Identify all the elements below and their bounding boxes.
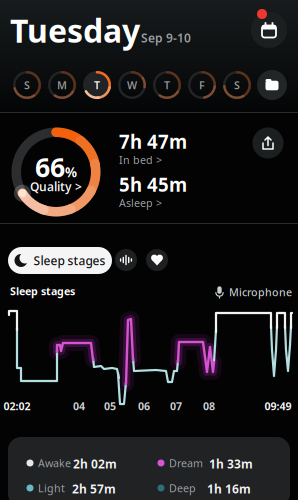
staticText: 07	[170, 399, 182, 413]
staticText: Microphone	[229, 285, 292, 299]
staticText: Sleep stages	[10, 284, 75, 298]
staticText: Tuesday	[10, 9, 140, 51]
staticText: 1h 33m	[209, 456, 253, 472]
staticText: Asleep >	[119, 196, 162, 210]
staticText: In bed >	[119, 153, 162, 167]
staticText: T	[164, 78, 170, 92]
button[interactable]: T	[82, 70, 112, 100]
button[interactable]	[247, 8, 291, 52]
staticText: 1h 16m	[207, 481, 251, 497]
staticText: T	[94, 78, 100, 92]
staticText: 09:49	[264, 399, 291, 413]
staticText: M	[57, 78, 67, 92]
staticText: F	[199, 78, 205, 92]
button[interactable]	[255, 68, 289, 102]
staticText: %	[65, 163, 77, 181]
staticText: 5h 45m	[119, 172, 187, 197]
button[interactable]	[145, 248, 169, 272]
button[interactable]: S	[222, 70, 252, 100]
button[interactable]: 7h 47m	[119, 129, 187, 167]
staticText: W	[127, 78, 137, 92]
staticText: Sep 9-10	[141, 30, 191, 46]
staticText: 66	[35, 149, 65, 185]
button[interactable]: M	[47, 70, 77, 100]
button[interactable]: Sleep stages	[8, 247, 112, 274]
button[interactable]: 5h 45m	[119, 172, 187, 210]
staticText: Dream	[169, 456, 203, 470]
staticText: S	[24, 78, 30, 92]
button[interactable]: S	[12, 70, 42, 100]
button[interactable]	[249, 124, 287, 162]
staticText: 06	[138, 399, 150, 413]
button[interactable]: W	[117, 70, 147, 100]
button[interactable]	[114, 248, 138, 272]
staticText: Quality >	[30, 178, 82, 194]
staticText: Deep	[169, 481, 196, 495]
staticText: 2h 57m	[72, 481, 116, 497]
staticText: 08	[203, 399, 215, 413]
button[interactable]: 66	[11, 127, 101, 217]
staticText: 05	[104, 399, 116, 413]
staticText: 7h 47m	[119, 129, 187, 154]
staticText: Light	[38, 481, 65, 495]
staticText: S	[234, 78, 240, 92]
button[interactable]: T	[152, 70, 182, 100]
button[interactable]: Microphone	[215, 285, 292, 299]
staticText: Awake	[38, 456, 71, 470]
staticText: 2h 02m	[73, 456, 117, 472]
staticText: Sleep stages	[33, 252, 105, 268]
button[interactable]: F	[187, 70, 217, 100]
staticText: 02:02	[3, 399, 30, 413]
staticText: 04	[73, 399, 85, 413]
